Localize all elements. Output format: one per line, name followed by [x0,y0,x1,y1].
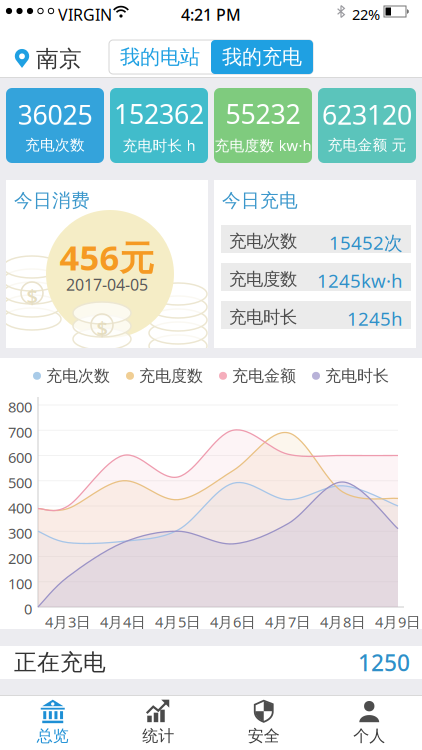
staticText: 充电度数 [139,366,203,386]
staticText: 充电度数 [229,268,297,290]
staticText: 充电次数 [25,136,85,154]
staticText: 统计 [142,726,174,746]
staticText: $ [96,315,107,342]
staticText: 100 [8,574,32,593]
staticText: 400 [8,498,32,517]
staticText: 充电时长 h [122,135,195,155]
staticText: 安全 [248,726,280,746]
staticText: 22% [352,4,380,24]
staticText: 4月5日 [155,612,201,631]
button[interactable]: 55232 [214,88,312,163]
button[interactable]: 总览 [0,695,105,750]
staticText: 36025 [17,97,92,132]
staticText: 500 [8,473,32,492]
staticText: VIRGIN [58,4,112,25]
staticText: 456元 [59,234,154,280]
staticText: 0 [24,599,32,618]
button[interactable]: 623120 [318,88,416,163]
staticText: 充电时长 [229,306,297,328]
staticText: 今日消费 [14,189,90,212]
staticText: 55232 [225,96,300,131]
button[interactable]: 统计 [105,695,211,750]
button[interactable]: 36025 [6,88,104,163]
button[interactable]: 我的电站 [109,40,211,74]
staticText: 300 [8,523,32,543]
staticText: 800 [8,397,32,416]
staticText: 南京 [36,45,82,73]
staticText: 700 [8,422,32,442]
staticText: 我的充电 [222,45,302,69]
staticText: 1245h [347,306,403,331]
button[interactable]: 南京 [14,45,82,73]
staticText: 4月8日 [320,612,366,631]
staticText: $ [26,283,37,310]
staticText: 总览 [37,726,69,746]
staticText: 152362 [114,96,204,131]
staticText: 充电时长 [325,366,389,386]
staticText: 我的电站 [120,45,200,69]
staticText: 正在充电 [14,649,106,676]
staticText: 4:21 PM [181,4,241,25]
staticText: 4月6日 [210,612,256,631]
button[interactable]: 正在充电 [0,646,422,679]
staticText: 1245kw·h [317,268,403,293]
staticText: 600 [8,447,32,467]
button[interactable]: 152362 [110,88,208,163]
staticText: 1250 [358,647,410,677]
staticText: 今日充电 [222,189,298,212]
staticText: 200 [8,548,32,568]
staticText: 充电金额 [232,366,296,386]
staticText: 15452次 [329,230,403,255]
staticText: 充电度数 kw·h [214,135,311,155]
button[interactable]: 个人 [316,695,422,750]
button[interactable]: 我的充电 [211,40,313,74]
staticText: 4月9日 [375,612,421,631]
staticText: 充电金额 元 [327,136,406,154]
staticText: 4月3日 [45,612,91,631]
staticText: 2017-04-05 [66,274,148,295]
button[interactable]: 安全 [211,695,316,750]
staticText: 623120 [322,97,412,132]
staticText: 充电次数 [46,366,110,386]
staticText: 4月7日 [265,612,311,631]
staticText: 充电次数 [229,230,297,252]
staticText: 4月4日 [100,612,146,631]
staticText: 个人 [353,726,385,746]
